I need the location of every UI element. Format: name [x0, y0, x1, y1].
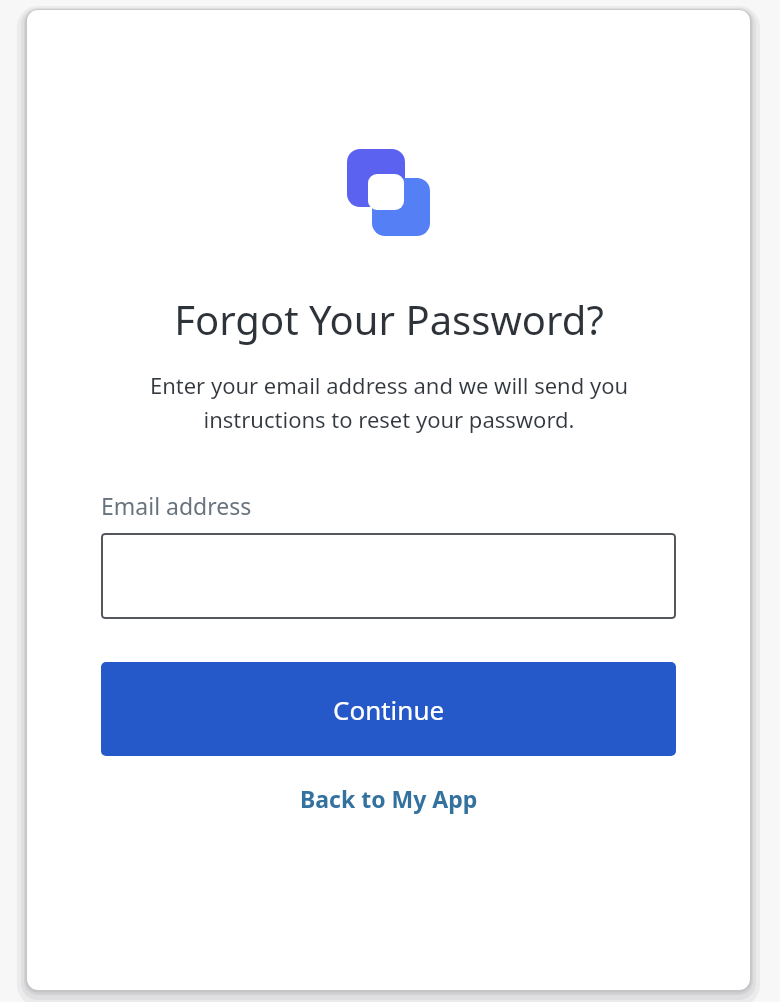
button[interactable]: Back to My App	[101, 772, 676, 824]
staticText: Enter your email address and we will sen…	[109, 370, 669, 434]
staticText: Forgot Your Password?	[174, 292, 604, 346]
staticText: Back to My App	[300, 783, 478, 814]
staticText: Email address	[101, 490, 252, 521]
button[interactable]: Email address input	[101, 533, 676, 619]
staticText: Continue	[333, 692, 445, 727]
button[interactable]: Continue	[101, 662, 676, 756]
